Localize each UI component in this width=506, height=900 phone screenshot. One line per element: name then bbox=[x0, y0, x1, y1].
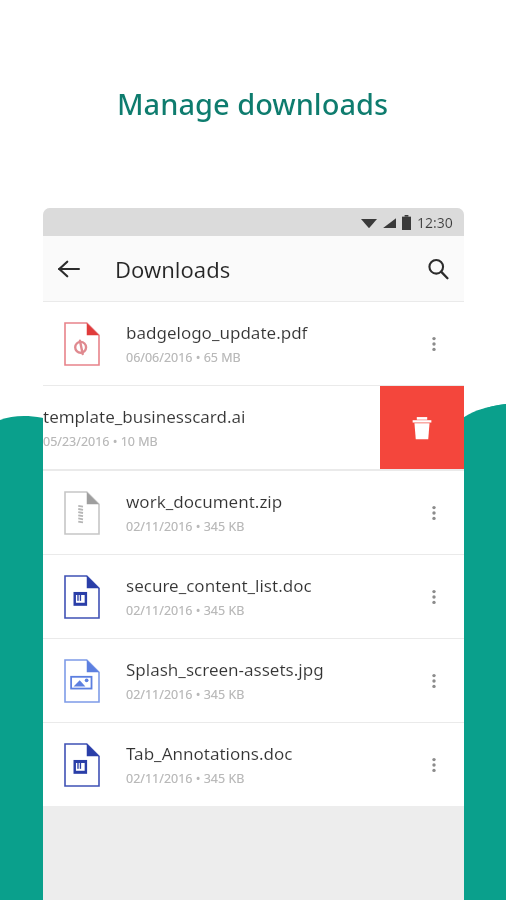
staticText: Manage downloads bbox=[117, 84, 389, 123]
staticText: 02/11/2016 • 345 KB bbox=[126, 686, 245, 703]
button[interactable]: Splash_screen-assets.jpg bbox=[43, 639, 464, 722]
staticText: 02/11/2016 • 345 KB bbox=[126, 518, 245, 535]
button[interactable]: badgelogo_update.pdf bbox=[43, 302, 464, 385]
staticText: 06/06/2016 • 65 MB bbox=[126, 349, 241, 366]
button[interactable]: More options bbox=[410, 573, 458, 621]
staticText: secure_content_list.doc bbox=[126, 574, 312, 597]
button[interactable]: work_document.zip bbox=[43, 471, 464, 554]
button[interactable]: secure_content_list.doc bbox=[43, 555, 464, 638]
staticText: 05/23/2016 • 10 MB bbox=[43, 433, 158, 450]
staticText: Downloads bbox=[115, 254, 231, 284]
button[interactable]: Search bbox=[412, 243, 464, 295]
staticText: template_businesscard.ai bbox=[43, 405, 246, 428]
button[interactable]: More options bbox=[410, 320, 458, 368]
staticText: work_document.zip bbox=[126, 490, 283, 513]
button[interactable]: Tab_Annotations.doc bbox=[43, 723, 464, 806]
button[interactable]: More options bbox=[410, 489, 458, 537]
staticText: Splash_screen-assets.jpg bbox=[126, 658, 324, 681]
staticText: 02/11/2016 • 345 KB bbox=[126, 770, 245, 787]
button[interactable]: More options bbox=[410, 657, 458, 705]
staticText: 02/11/2016 • 345 KB bbox=[126, 602, 245, 619]
button[interactable]: More options bbox=[410, 741, 458, 789]
button[interactable]: Delete bbox=[380, 386, 464, 469]
staticText: 12:30 bbox=[417, 213, 453, 232]
staticText: badgelogo_update.pdf bbox=[126, 321, 308, 344]
button[interactable]: template_businesscard.ai bbox=[43, 386, 464, 469]
staticText: Tab_Annotations.doc bbox=[126, 742, 293, 765]
button[interactable]: Back bbox=[43, 243, 95, 295]
